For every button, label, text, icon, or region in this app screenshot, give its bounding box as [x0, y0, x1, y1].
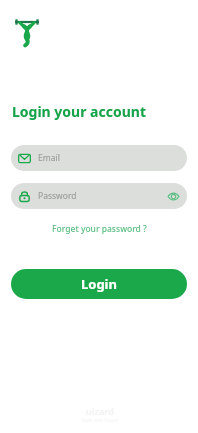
button[interactable]: Email: [11, 145, 187, 171]
staticText: Login: [81, 275, 117, 293]
button[interactable]: Show password: [167, 190, 180, 203]
staticText: Email: [38, 152, 60, 164]
button[interactable]: Login: [11, 269, 187, 299]
staticText: uizard: [86, 405, 114, 417]
staticText: Password: [38, 190, 77, 202]
button[interactable]: Password: [11, 183, 187, 209]
staticText: Login your account: [12, 102, 146, 121]
button[interactable]: Forget your password ?: [0, 223, 198, 235]
staticText: Forget your password ?: [52, 223, 147, 235]
